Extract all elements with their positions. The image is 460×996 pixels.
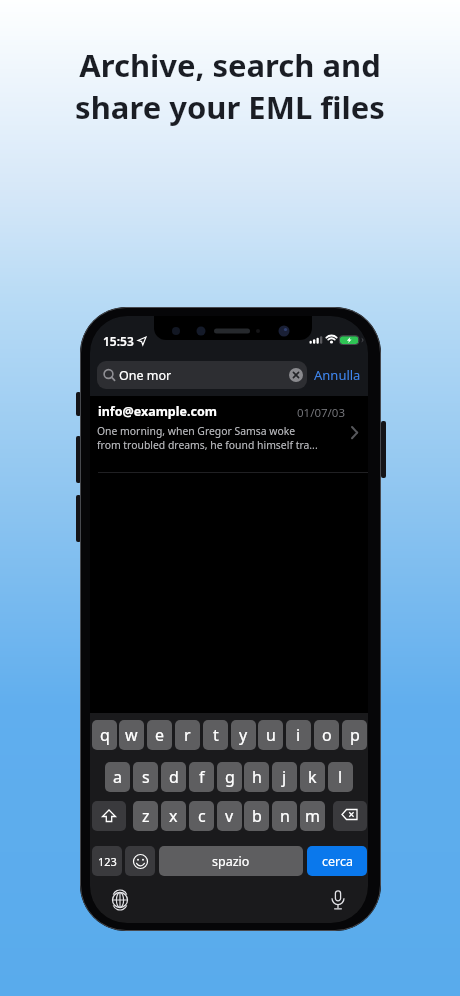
staticText: i <box>296 724 301 746</box>
button[interactable]: f <box>189 762 214 792</box>
button[interactable]: u <box>258 720 283 750</box>
button[interactable]: z <box>133 801 158 831</box>
staticText: y <box>239 724 248 746</box>
button[interactable] <box>109 889 131 911</box>
staticText: j <box>282 766 287 788</box>
button[interactable]: One mor <box>97 361 307 389</box>
button[interactable]: i <box>286 720 311 750</box>
staticText: Archive, search and share your EML files <box>0 44 460 128</box>
staticText: c <box>198 805 206 827</box>
button[interactable] <box>327 888 349 912</box>
button[interactable]: n <box>272 801 297 831</box>
button[interactable]: s <box>133 762 158 792</box>
staticText: d <box>169 766 179 788</box>
button[interactable]: d <box>161 762 186 792</box>
staticText: n <box>280 805 290 827</box>
button[interactable]: spazio <box>159 846 303 876</box>
staticText: s <box>142 766 150 788</box>
staticText: 15:53 <box>103 333 134 349</box>
button[interactable]: b <box>244 801 269 831</box>
staticText: e <box>155 724 165 746</box>
staticText: One mor <box>119 367 172 384</box>
staticText: p <box>350 724 360 746</box>
staticText: h <box>252 766 262 788</box>
staticText: z <box>142 805 150 827</box>
staticText: v <box>225 805 234 827</box>
button[interactable]: q <box>92 720 117 750</box>
staticText: r <box>184 724 191 746</box>
button[interactable]: 123 <box>92 846 122 876</box>
staticText: x <box>169 805 178 827</box>
button[interactable]: y <box>231 720 256 750</box>
staticText: w <box>125 724 138 746</box>
button[interactable]: w <box>119 720 144 750</box>
button[interactable]: info@example.com <box>90 396 368 473</box>
button[interactable]: j <box>272 762 297 792</box>
button[interactable]: r <box>175 720 200 750</box>
staticText: q <box>100 724 110 746</box>
button[interactable]: p <box>342 720 367 750</box>
button[interactable]: g <box>217 762 242 792</box>
staticText: Annulla <box>314 366 361 384</box>
button[interactable]: c <box>189 801 214 831</box>
staticText: g <box>225 766 235 788</box>
button[interactable]: o <box>314 720 339 750</box>
staticText: m <box>305 805 320 827</box>
button[interactable]: x <box>161 801 186 831</box>
button[interactable]: m <box>300 801 325 831</box>
staticText: k <box>308 766 317 788</box>
staticText: t <box>213 724 219 746</box>
button[interactable]: Annulla <box>314 361 368 389</box>
button[interactable]: h <box>244 762 269 792</box>
staticText: u <box>266 724 276 746</box>
button[interactable]: e <box>147 720 172 750</box>
staticText: One morning, when Gregor Samsa woke from… <box>97 424 318 452</box>
button[interactable]: l <box>328 762 353 792</box>
button[interactable] <box>125 846 155 876</box>
button[interactable]: t <box>203 720 228 750</box>
button[interactable] <box>92 801 126 831</box>
button[interactable]: v <box>217 801 242 831</box>
staticText: l <box>338 766 343 788</box>
staticText: a <box>113 766 122 788</box>
staticText: cerca <box>322 853 353 870</box>
staticText: b <box>252 805 262 827</box>
button[interactable]: a <box>105 762 130 792</box>
staticText: 123 <box>98 854 117 869</box>
staticText: spazio <box>212 853 250 870</box>
button[interactable]: cerca <box>307 846 367 876</box>
staticText: o <box>322 724 332 746</box>
button[interactable]: k <box>300 762 325 792</box>
button[interactable] <box>333 801 367 831</box>
staticText: f <box>199 766 205 788</box>
staticText: 01/07/03 <box>297 405 346 421</box>
staticText: info@example.com <box>98 403 217 420</box>
